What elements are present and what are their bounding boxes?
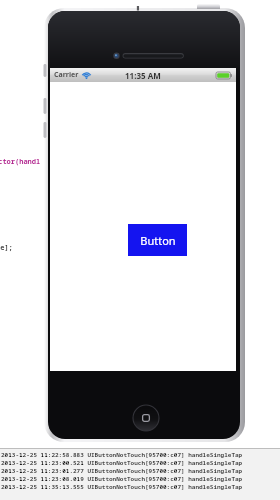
button[interactable]: Power: [197, 4, 220, 9]
staticText: 2013-12-25 11:23:01.277 UIButtonNotTouch…: [1, 467, 243, 475]
button[interactable]: Button: [128, 224, 187, 256]
staticText: 2013-12-25 11:23:00.521 UIButtonNotTouch…: [1, 459, 243, 467]
staticText: 2013-12-25 11:35:13.555 UIButtonNotTouch…: [1, 483, 243, 491]
staticText: Button: [140, 233, 176, 248]
staticText: 2013-12-25 11:22:58.883 UIButtonNotTouch…: [1, 451, 243, 459]
staticText: Carrier: [54, 70, 79, 80]
staticText: de];: [0, 243, 13, 253]
staticText: 2013-12-25 11:23:08.019 UIButtonNotTouch…: [1, 475, 243, 483]
button[interactable]: Home: [133, 405, 159, 431]
staticText: 11:35 AM: [125, 70, 161, 81]
staticText: ector(handl: [0, 157, 41, 167]
